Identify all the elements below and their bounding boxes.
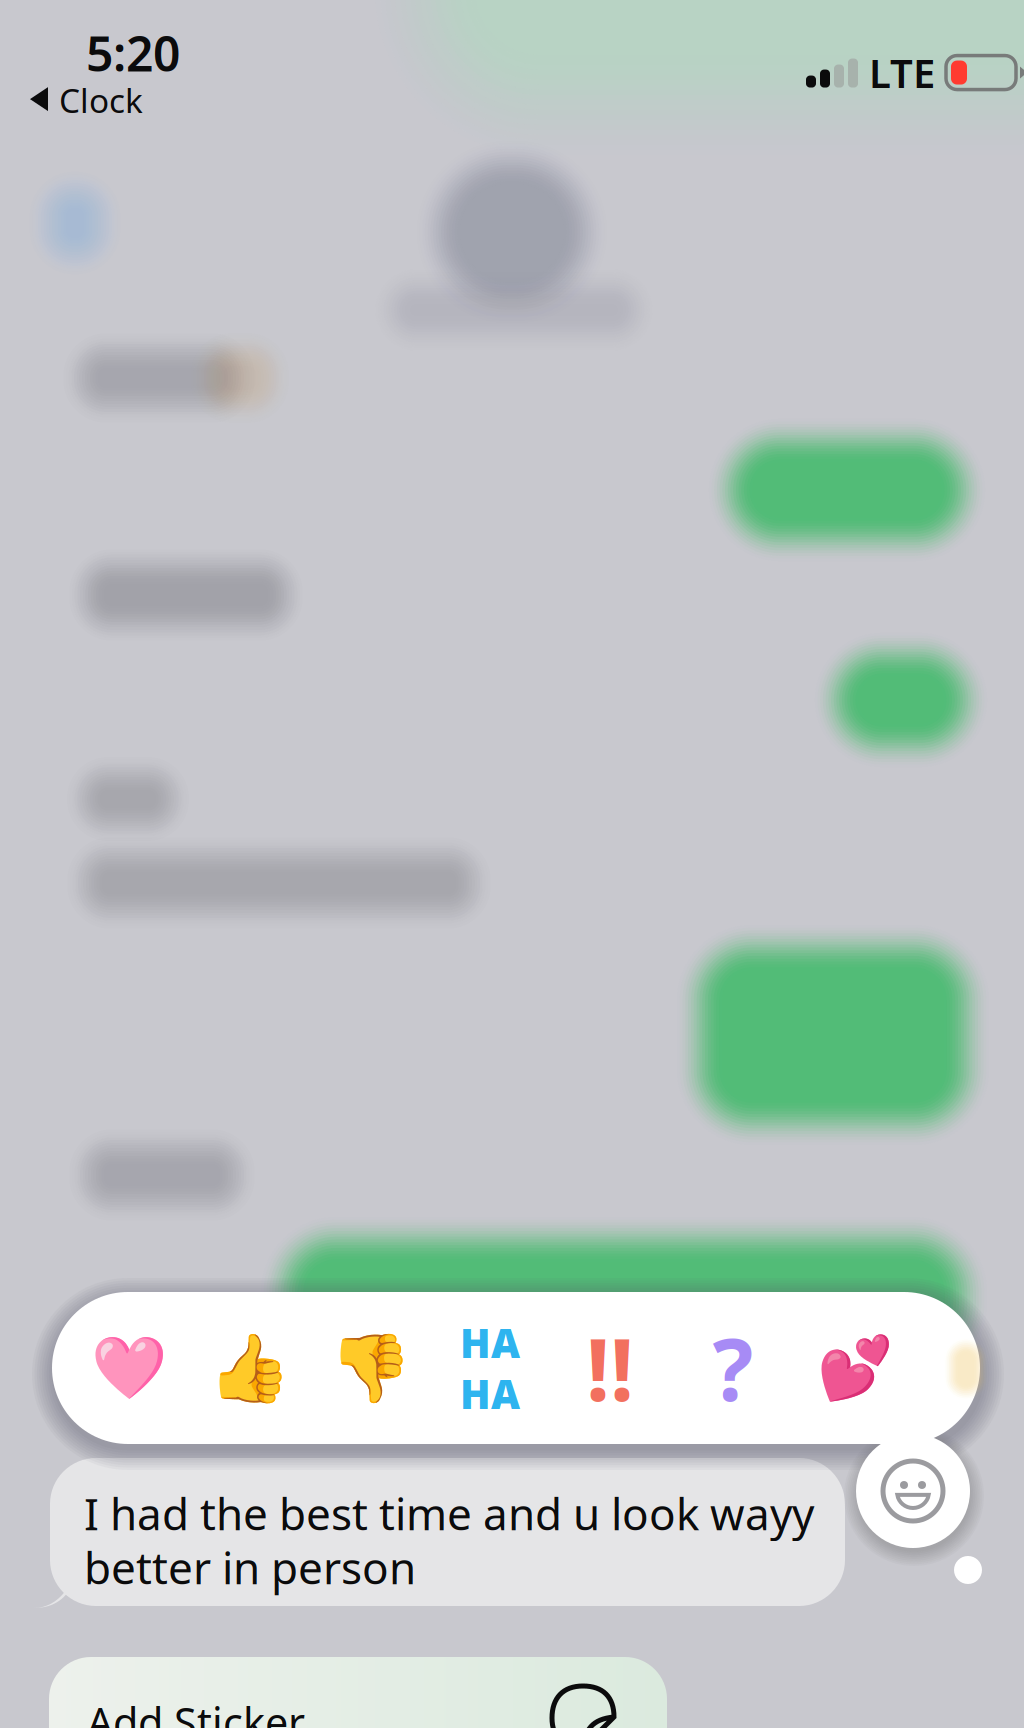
staticText: 5:20 [86,21,180,85]
button[interactable]: Thumbs up [193,1293,305,1443]
staticText: Add Sticker [87,1695,305,1728]
staticText: better in person [84,1538,416,1596]
staticText: I had the best time and u look wayy [84,1484,814,1542]
button[interactable]: Emoji keyboard [856,1434,970,1548]
staticText: HA [460,1367,520,1420]
staticText: 🩷 [91,1333,167,1403]
button[interactable]: Back to Clock [26,74,147,126]
button[interactable]: Haha [434,1293,546,1443]
staticText: ? [712,1311,753,1425]
button[interactable]: Thumbs down [314,1293,426,1443]
button[interactable]: Exclamation [554,1293,666,1443]
button[interactable]: Question [677,1293,789,1443]
button[interactable]: Love [73,1293,185,1443]
staticText: LTE [869,46,935,99]
staticText: HA [460,1316,520,1369]
button[interactable]: Two hearts [799,1293,911,1443]
staticText: 💕 [817,1333,893,1403]
staticText: !! [586,1311,634,1425]
button[interactable]: Add Sticker [49,1657,667,1728]
staticText: Clock [59,78,143,122]
staticText: 👎 [328,1330,411,1406]
staticText: 👍 [207,1330,290,1406]
